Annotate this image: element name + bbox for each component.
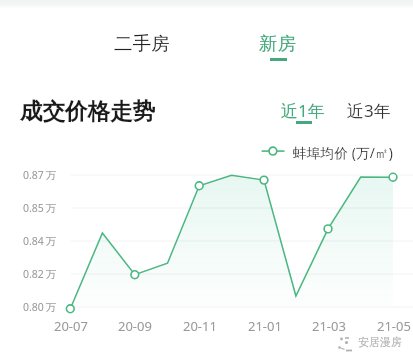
staticText: 0.82 万 [23,267,57,281]
staticText: 0.87 万 [23,168,57,182]
staticText: 蚌埠均价 (万/㎡) [293,143,393,162]
staticText: 0.80 万 [23,300,57,314]
staticText: 20-09 [118,317,152,335]
button[interactable]: 近1年 [277,95,329,126]
staticText: 21-03 [312,317,346,335]
staticText: 安居漫房 [358,335,402,349]
staticText: 0.85 万 [23,201,57,215]
staticText: 20-07 [54,317,88,335]
staticText: 20-11 [183,317,217,335]
staticText: 0.84 万 [23,234,57,248]
other: Price trend chart [0,0,413,359]
button[interactable]: 新房 [245,24,310,63]
staticText: 新房 [259,32,296,55]
staticText: 21-01 [248,317,282,335]
button[interactable]: 二手房 [100,24,184,63]
staticText: 21-05 [377,317,411,335]
staticText: 近1年 [281,99,325,122]
button[interactable]: 近3年 [343,95,395,126]
staticText: 成交价格走势 [20,97,155,125]
staticText: 近3年 [347,99,391,122]
staticText: 二手房 [114,32,170,55]
